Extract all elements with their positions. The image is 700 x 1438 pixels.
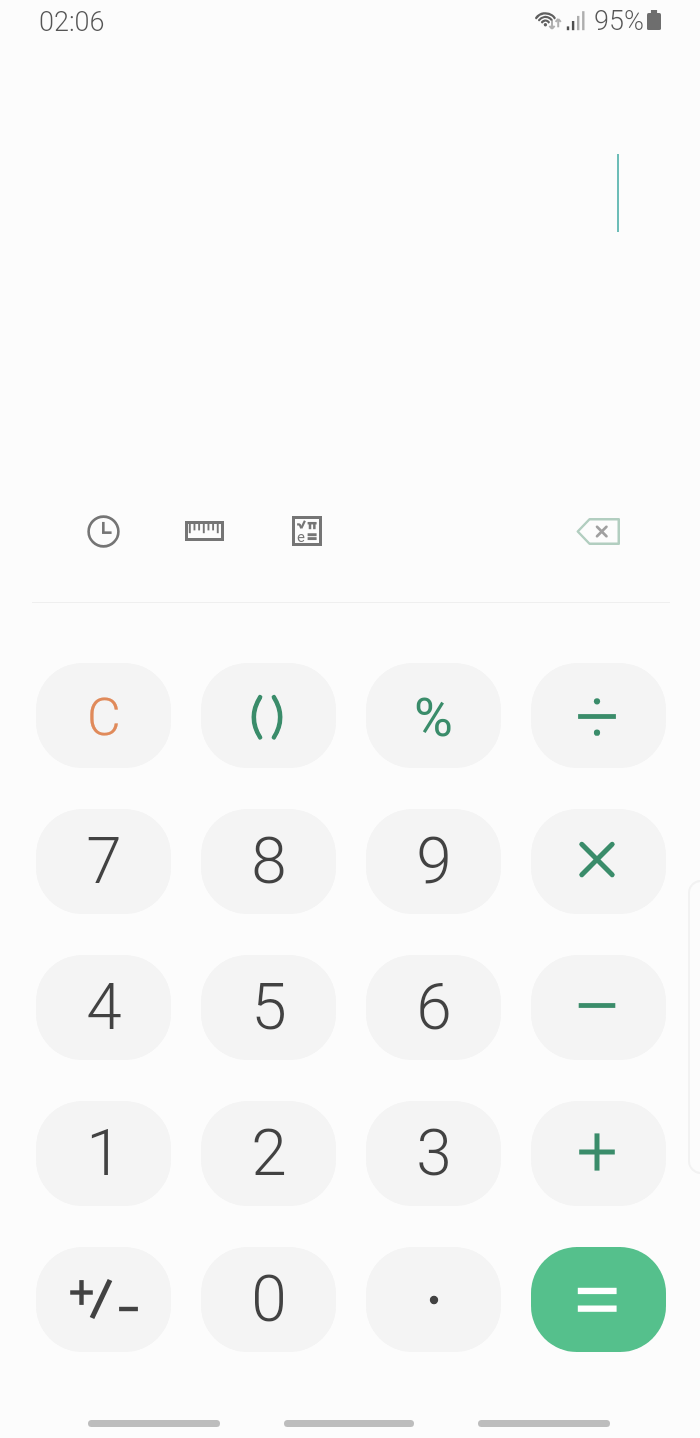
staticText: 5	[251, 970, 287, 1045]
staticText: C	[87, 687, 121, 748]
button[interactable]: History	[71, 499, 135, 563]
staticText: 95%	[594, 5, 644, 37]
button[interactable]: Equals	[531, 1247, 666, 1352]
staticText: 2	[251, 1116, 287, 1191]
button[interactable]: Plus minus	[36, 1247, 171, 1352]
button[interactable]: 5	[201, 955, 336, 1060]
button[interactable]: 3	[366, 1101, 501, 1206]
button[interactable]: %	[366, 663, 501, 768]
button[interactable]: Add	[531, 1101, 666, 1206]
button[interactable]: 0	[201, 1247, 336, 1352]
button[interactable]: 1	[36, 1101, 171, 1206]
button[interactable]: Parentheses	[201, 663, 336, 768]
button[interactable]: 7	[36, 809, 171, 914]
staticText: 4	[86, 970, 122, 1045]
button[interactable]: C	[36, 663, 171, 768]
button[interactable]: Subtract	[531, 955, 666, 1060]
button[interactable]: Scientific calculator	[275, 499, 339, 563]
button[interactable]: Decimal point	[366, 1247, 501, 1352]
button[interactable]: 4	[36, 955, 171, 1060]
staticText: e	[297, 528, 305, 546]
button[interactable]: Divide	[531, 663, 666, 768]
button[interactable]: 8	[201, 809, 336, 914]
button[interactable]: Backspace	[566, 499, 630, 563]
staticText: 3	[416, 1116, 452, 1191]
staticText: 7	[86, 824, 122, 899]
staticText: 8	[251, 824, 287, 899]
staticText: 9	[416, 824, 452, 899]
button[interactable]: 2	[201, 1101, 336, 1206]
button[interactable]: 9	[366, 809, 501, 914]
button[interactable]: 6	[366, 955, 501, 1060]
button[interactable]: Unit converter	[172, 499, 236, 563]
staticText: 6	[416, 970, 452, 1045]
staticText: %	[414, 687, 453, 749]
staticText: 02:06	[39, 6, 105, 38]
staticText: 1	[86, 1116, 122, 1191]
button[interactable]: Multiply	[531, 809, 666, 914]
staticText: 0	[251, 1262, 287, 1337]
